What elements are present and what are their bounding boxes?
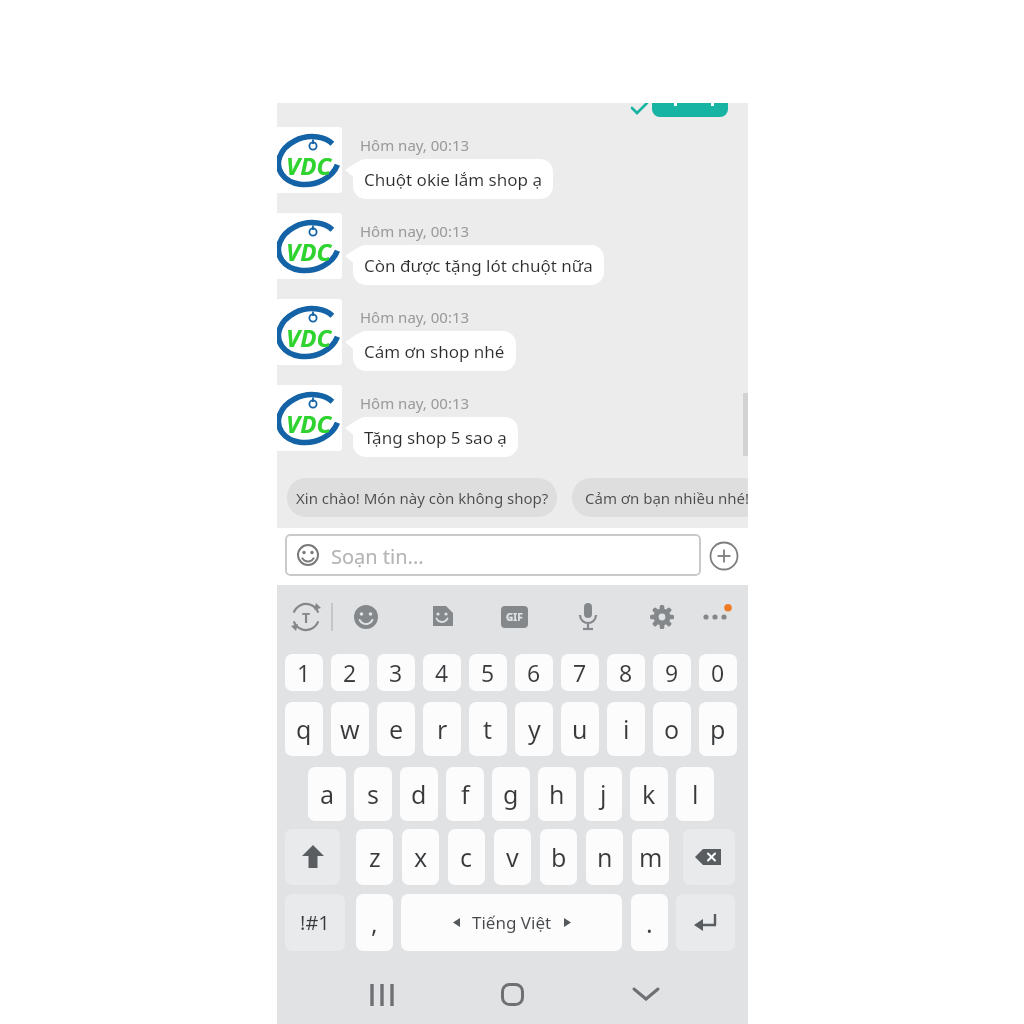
button[interactable]: q (285, 702, 323, 756)
staticText: VDC (286, 149, 332, 182)
button[interactable] (285, 829, 340, 885)
staticText: e (389, 712, 404, 746)
button[interactable]: 4 (423, 654, 461, 691)
button[interactable]: w (331, 702, 369, 756)
staticText: a (320, 777, 335, 811)
button[interactable] (683, 829, 735, 885)
staticText: o (664, 712, 680, 746)
button[interactable]: o (653, 702, 691, 756)
button[interactable]: 5 (469, 654, 507, 691)
staticText: c (460, 840, 473, 874)
staticText: 9 (665, 657, 679, 688)
button[interactable]: GIF (501, 606, 528, 628)
button[interactable] (429, 604, 455, 630)
staticText: T (302, 608, 311, 627)
button[interactable]: Soạn tin... (285, 534, 701, 576)
staticText: w (340, 712, 360, 746)
button[interactable] (652, 103, 728, 117)
staticText: m (639, 840, 663, 874)
staticText: 2 (343, 657, 357, 688)
button[interactable] (367, 983, 397, 1007)
button[interactable]: f (446, 767, 484, 821)
staticText: , (371, 906, 378, 940)
staticText: 3 (389, 657, 403, 688)
button[interactable]: c (448, 829, 485, 885)
staticText: g (503, 777, 519, 811)
button[interactable]: d (400, 767, 438, 821)
button[interactable]: , (356, 894, 393, 951)
staticText: y (528, 712, 541, 746)
button[interactable]: l (676, 767, 714, 821)
button[interactable]: T (290, 601, 322, 633)
button[interactable] (632, 985, 660, 1003)
staticText: z (369, 840, 381, 874)
button[interactable]: h (538, 767, 576, 821)
button[interactable]: 2 (331, 654, 369, 691)
button[interactable]: s (354, 767, 392, 821)
button[interactable]: u (561, 702, 599, 756)
button[interactable]: 1 (285, 654, 323, 691)
staticText: d (411, 777, 427, 811)
staticText: 1 (297, 657, 311, 688)
staticText: 0 (711, 657, 725, 688)
staticText: n (597, 840, 613, 874)
staticText: p (710, 712, 726, 746)
staticText: v (506, 840, 519, 874)
button[interactable] (577, 602, 599, 632)
staticText: q (296, 712, 312, 746)
button[interactable]: e (377, 702, 415, 756)
button[interactable] (649, 604, 675, 630)
button[interactable] (709, 541, 739, 571)
staticText: b (551, 840, 567, 874)
button[interactable] (353, 604, 379, 630)
staticText: VDC (286, 235, 332, 268)
button[interactable]: 7 (561, 654, 599, 691)
staticText: Hôm nay, 00:13 (360, 221, 470, 241)
button[interactable]: . (631, 894, 668, 951)
button[interactable]: n (586, 829, 623, 885)
button[interactable]: !#1 (285, 894, 345, 951)
button[interactable] (697, 604, 733, 630)
button[interactable]: Xin chào! Món này còn không shop? (287, 478, 557, 517)
button[interactable]: x (402, 829, 439, 885)
staticText: h (549, 777, 565, 811)
button[interactable]: m (632, 829, 669, 885)
staticText: Cảm ơn bạn nhiều nhé! (585, 488, 748, 508)
staticText: Soạn tin... (331, 543, 424, 570)
button[interactable]: 3 (377, 654, 415, 691)
button[interactable]: i (607, 702, 645, 756)
button[interactable]: 6 (515, 654, 553, 691)
button[interactable]: k (630, 767, 668, 821)
button[interactable] (676, 894, 735, 951)
staticText: Cám ơn shop nhé (364, 340, 505, 363)
button[interactable] (501, 983, 524, 1006)
button[interactable]: r (423, 702, 461, 756)
staticText: . (646, 906, 653, 940)
staticText: GIF (506, 610, 523, 624)
staticText: 7 (573, 657, 587, 688)
staticText: Tặng shop 5 sao ạ (364, 426, 507, 449)
staticText: j (600, 777, 607, 811)
button[interactable]: a (308, 767, 346, 821)
button[interactable]: Tiếng Việt (401, 894, 622, 951)
button[interactable]: b (540, 829, 577, 885)
button[interactable]: p (699, 702, 737, 756)
button[interactable]: j (584, 767, 622, 821)
button[interactable]: v (494, 829, 531, 885)
button[interactable]: z (356, 829, 393, 885)
button[interactable]: y (515, 702, 553, 756)
staticText: u (572, 712, 588, 746)
button[interactable]: 0 (699, 654, 737, 691)
button[interactable]: 9 (653, 654, 691, 691)
staticText: Xin chào! Món này còn không shop? (296, 488, 549, 508)
staticText: i (623, 712, 630, 746)
staticText: f (461, 777, 470, 811)
button[interactable]: 8 (607, 654, 645, 691)
staticText: Hôm nay, 00:13 (360, 135, 470, 155)
staticText: t (483, 712, 493, 746)
staticText: Chuột okie lắm shop ạ (364, 168, 542, 191)
button[interactable]: g (492, 767, 530, 821)
button[interactable]: t (469, 702, 507, 756)
button[interactable]: Cảm ơn bạn nhiều nhé! (572, 478, 748, 517)
staticText: r (437, 712, 448, 746)
